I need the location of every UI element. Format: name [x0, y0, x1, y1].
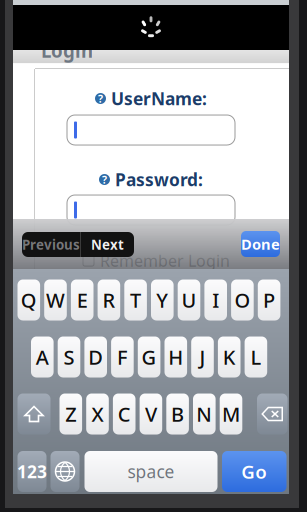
button[interactable]: B: [166, 393, 189, 434]
button[interactable]: F: [111, 336, 134, 377]
staticText: E: [77, 287, 88, 313]
button[interactable]: Next: [81, 232, 134, 257]
staticText: N: [196, 401, 212, 427]
button[interactable]: O: [231, 279, 254, 320]
staticText: Go: [241, 459, 267, 484]
button[interactable]: V: [140, 393, 162, 434]
button[interactable]: W: [44, 279, 67, 320]
button[interactable]: K: [218, 336, 240, 377]
staticText: V: [145, 401, 157, 427]
button[interactable]: space: [84, 451, 217, 492]
button[interactable]: G: [138, 336, 160, 377]
button[interactable]: E: [71, 279, 93, 320]
button[interactable]: U: [178, 279, 200, 320]
staticText: W: [46, 287, 65, 313]
staticText: ?: [102, 172, 107, 187]
staticText: C: [118, 401, 131, 427]
button[interactable]: I: [204, 279, 227, 320]
button[interactable]: A: [31, 336, 54, 377]
staticText: K: [223, 344, 236, 370]
staticText: M: [222, 401, 240, 427]
button[interactable]: Delete: [257, 393, 287, 434]
staticText: Next: [91, 236, 124, 253]
button[interactable]: Z: [59, 393, 82, 434]
button[interactable]: Shift: [17, 393, 50, 434]
button[interactable]: D: [84, 336, 107, 377]
button[interactable]: [67, 115, 235, 145]
staticText: G: [142, 344, 157, 370]
button[interactable]: N: [193, 393, 216, 434]
staticText: Password:: [115, 168, 203, 191]
staticText: T: [130, 287, 141, 313]
button[interactable]: R: [98, 279, 120, 320]
button[interactable]: Previous: [22, 232, 80, 257]
staticText: A: [36, 344, 49, 370]
button[interactable]: [67, 195, 235, 225]
staticText: I: [212, 287, 219, 313]
staticText: ?: [98, 91, 103, 106]
staticText: P: [263, 287, 275, 313]
staticText: Done: [241, 234, 280, 254]
staticText: Z: [65, 401, 76, 427]
button[interactable]: Go: [222, 451, 286, 492]
staticText: Login: [41, 38, 93, 63]
staticText: Remember Login: [100, 250, 230, 271]
button[interactable]: S: [58, 336, 80, 377]
staticText: Q: [21, 287, 37, 313]
staticText: space: [127, 460, 174, 483]
button[interactable]: Next keyboard: [50, 451, 79, 492]
button[interactable]: J: [191, 336, 214, 377]
staticText: R: [102, 287, 115, 313]
button[interactable]: L: [245, 336, 267, 377]
button[interactable]: Numbers: [17, 451, 46, 492]
button[interactable]: Q: [17, 279, 40, 320]
staticText: J: [199, 344, 205, 370]
staticText: Y: [156, 287, 168, 313]
button[interactable]: M: [220, 393, 242, 434]
button[interactable]: H: [164, 336, 187, 377]
staticText: U: [181, 287, 196, 313]
staticText: F: [117, 344, 128, 370]
button[interactable]: C: [113, 393, 135, 434]
staticText: UserName:: [111, 87, 207, 110]
button[interactable]: X: [86, 393, 109, 434]
staticText: B: [171, 401, 184, 427]
staticText: D: [88, 344, 103, 370]
staticText: Previous: [22, 236, 80, 253]
button[interactable]: P: [258, 279, 280, 320]
staticText: S: [63, 344, 74, 370]
button[interactable]: Y: [151, 279, 174, 320]
staticText: H: [168, 344, 183, 370]
button[interactable]: T: [124, 279, 147, 320]
button[interactable]: Done: [241, 231, 280, 257]
staticText: X: [91, 401, 103, 427]
staticText: 123: [17, 460, 47, 483]
staticText: L: [250, 344, 261, 370]
staticText: O: [234, 287, 250, 313]
